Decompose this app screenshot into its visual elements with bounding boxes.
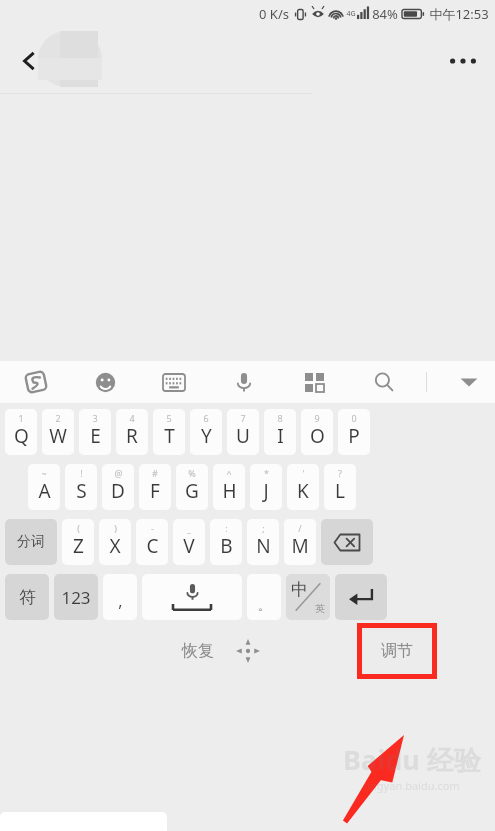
staticText: 5: [166, 412, 172, 424]
button[interactable]: More functions: [296, 364, 332, 400]
staticText: K: [297, 478, 309, 504]
staticText: E: [90, 423, 101, 449]
staticText: 8: [277, 412, 283, 424]
button[interactable]: (: [62, 519, 94, 565]
staticText: G: [185, 478, 199, 504]
button[interactable]: @: [102, 464, 134, 510]
button[interactable]: Emoji: [87, 364, 123, 400]
button[interactable]: Delete: [321, 519, 373, 565]
staticText: 中午12:53: [429, 5, 489, 23]
staticText: :: [225, 522, 228, 534]
staticText: S: [76, 478, 87, 504]
button[interactable]: Back: [6, 38, 52, 84]
staticText: N: [256, 533, 271, 559]
staticText: U: [236, 423, 250, 449]
button[interactable]: 调节: [362, 628, 432, 674]
button[interactable]: 。: [247, 574, 281, 620]
staticText: Q: [14, 423, 29, 449]
button[interactable]: -: [136, 519, 168, 565]
staticText: %: [188, 467, 196, 479]
staticText: !: [80, 467, 83, 479]
staticText: Baidu 经验: [343, 741, 481, 778]
button[interactable]: *: [250, 464, 282, 510]
staticText: Y: [201, 423, 212, 449]
staticText: @: [114, 467, 123, 479]
button[interactable]: ^: [213, 464, 245, 510]
button[interactable]: ~: [28, 464, 60, 510]
button[interactable]: 7: [227, 409, 259, 455]
button[interactable]: ): [99, 519, 131, 565]
button[interactable]: More options: [439, 37, 487, 85]
button[interactable]: 分词: [5, 519, 57, 565]
staticText: 9: [314, 412, 320, 424]
button[interactable]: Space: [142, 574, 242, 620]
staticText: O: [310, 423, 325, 449]
button[interactable]: Move keyboard: [228, 631, 268, 671]
staticText: ': [302, 467, 305, 479]
button[interactable]: Enter: [335, 574, 387, 620]
button[interactable]: ,: [103, 574, 137, 620]
button[interactable]: 0: [338, 409, 370, 455]
button[interactable]: 1: [5, 409, 37, 455]
staticText: 3: [92, 412, 98, 424]
staticText: -: [151, 522, 154, 534]
staticText: 英: [315, 602, 325, 615]
button[interactable]: ': [287, 464, 319, 510]
staticText: 0: [351, 412, 357, 424]
button[interactable]: :: [210, 519, 242, 565]
button[interactable]: Voice input: [226, 364, 262, 400]
button[interactable]: !: [65, 464, 97, 510]
button[interactable]: 8: [264, 409, 296, 455]
staticText: /: [298, 522, 302, 534]
button[interactable]: %: [176, 464, 208, 510]
staticText: R: [126, 423, 138, 449]
staticText: 调节: [381, 641, 413, 661]
staticText: ;: [262, 522, 265, 534]
staticText: T: [164, 423, 175, 449]
button[interactable]: 2: [42, 409, 74, 455]
staticText: 123: [61, 586, 91, 609]
staticText: 1: [18, 412, 24, 424]
button[interactable]: Sogou input: [18, 364, 54, 400]
button[interactable]: 6: [190, 409, 222, 455]
staticText: 0 K/s: [259, 5, 289, 23]
button[interactable]: _: [173, 519, 205, 565]
staticText: H: [222, 478, 237, 504]
button[interactable]: 123: [54, 574, 98, 620]
staticText: #: [152, 467, 158, 479]
button[interactable]: #: [139, 464, 171, 510]
staticText: W: [49, 423, 67, 449]
staticText: 。: [258, 598, 270, 613]
button[interactable]: ;: [247, 519, 279, 565]
staticText: _: [187, 522, 191, 534]
staticText: I: [277, 423, 284, 449]
button[interactable]: Hide keyboard: [451, 364, 487, 400]
button[interactable]: Keyboard layout: [156, 364, 192, 400]
staticText: 4G: [346, 9, 356, 19]
staticText: 4: [129, 412, 135, 424]
staticText: ~: [41, 467, 47, 479]
staticText: ): [114, 522, 117, 534]
button[interactable]: Search: [366, 364, 402, 400]
staticText: Z: [73, 533, 84, 559]
button[interactable]: 恢复: [182, 641, 214, 661]
staticText: 中: [291, 579, 308, 600]
staticText: 分词: [17, 533, 45, 551]
staticText: A: [38, 478, 51, 504]
button[interactable]: /: [284, 519, 316, 565]
button[interactable]: 5: [153, 409, 185, 455]
button[interactable]: ?: [324, 464, 356, 510]
staticText: B: [220, 533, 233, 559]
staticText: L: [335, 478, 345, 504]
staticText: C: [146, 533, 159, 559]
button[interactable]: 4: [116, 409, 148, 455]
button[interactable]: 3: [79, 409, 111, 455]
button[interactable]: 符: [5, 574, 49, 620]
staticText: 7: [240, 412, 246, 424]
staticText: F: [150, 478, 160, 504]
button[interactable]: 9: [301, 409, 333, 455]
staticText: ,: [118, 590, 123, 612]
button[interactable]: Chinese English toggle: [286, 574, 330, 620]
staticText: X: [109, 533, 121, 559]
staticText: (: [77, 522, 80, 534]
